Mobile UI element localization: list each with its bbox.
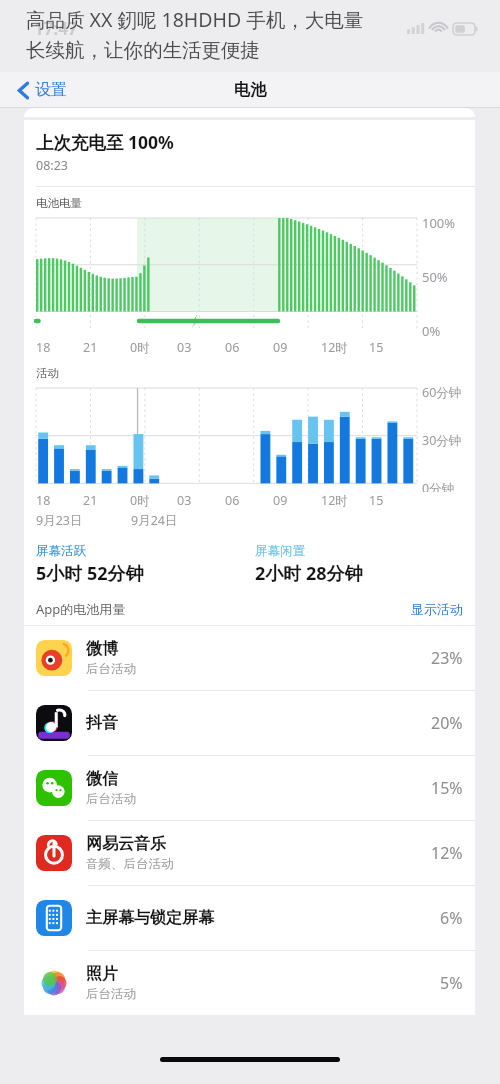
staticText: 音频、后台活动 (86, 856, 174, 872)
staticText: 屏幕活跃 (36, 543, 86, 559)
staticText: 5小时 52分钟 (36, 561, 144, 586)
staticText: 抖音 (86, 713, 118, 733)
staticText: 06 (225, 492, 273, 509)
staticText: 高品质 XX 釰呢 18HDHD 手机，大电量 (26, 6, 364, 33)
staticText: 长续航，让你的生活更便捷 (26, 38, 260, 63)
staticText: 18 (36, 492, 83, 509)
button[interactable]: 网易云音乐 (24, 821, 475, 886)
staticText: 后台活动 (86, 986, 136, 1002)
staticText: 主屏幕与锁定屏幕 (86, 908, 214, 928)
staticText: 活动 (36, 366, 59, 380)
staticText: 100% (422, 214, 456, 232)
staticText: 网易云音乐 (86, 834, 166, 854)
staticText: 30分钟 (422, 432, 462, 449)
staticText: 电池电量 (36, 196, 82, 210)
staticText: 2小时 28分钟 (255, 561, 363, 586)
button[interactable]: 微信 (24, 756, 475, 821)
button[interactable]: 微博 (24, 626, 475, 691)
staticText: 0时 (130, 339, 177, 356)
staticText: 60分钟 (422, 384, 462, 401)
staticText: 17:47 (34, 17, 78, 40)
button[interactable]: 照片 (24, 951, 475, 1015)
staticText: 08:23 (36, 157, 68, 174)
staticText: 50% (422, 268, 448, 286)
button[interactable]: 主屏幕与锁定屏幕 (24, 886, 475, 951)
staticText: 15 (369, 492, 417, 509)
staticText: 微博 (86, 639, 118, 659)
staticText: 06 (225, 339, 273, 356)
button[interactable]: 设置 (14, 77, 71, 103)
staticText: 18 (36, 339, 83, 356)
staticText: 后台活动 (86, 791, 136, 807)
staticText: 23% (431, 647, 463, 669)
staticText: 20% (431, 712, 463, 734)
staticText: 屏幕闲置 (255, 543, 305, 559)
staticText: 0分钟 (422, 480, 455, 492)
staticText: 0时 (130, 492, 177, 509)
staticText: 电池 (234, 80, 266, 100)
staticText: 0% (422, 322, 441, 339)
staticText: 照片 (86, 964, 118, 984)
staticText: 显示活动 (411, 601, 463, 617)
staticText: 12时 (321, 492, 369, 509)
staticText: 9月23日 (36, 512, 131, 529)
button[interactable]: 显示活动 (411, 601, 463, 617)
staticText: 9月24日 (131, 512, 417, 529)
staticText: 15 (369, 339, 417, 356)
staticText: 21 (83, 339, 130, 356)
button[interactable]: 抖音 (24, 691, 475, 756)
staticText: 微信 (86, 769, 118, 789)
staticText: 上次充电至 100% (36, 130, 174, 154)
staticText: 09 (273, 492, 321, 509)
staticText: 后台活动 (86, 661, 136, 677)
staticText: 03 (177, 492, 225, 509)
staticText: 5% (440, 972, 463, 994)
staticText: App的电池用量 (36, 600, 411, 618)
staticText: 15% (431, 777, 463, 799)
staticText: 6% (440, 907, 463, 929)
staticText: 03 (177, 339, 225, 356)
staticText: 21 (83, 492, 130, 509)
staticText: 12% (431, 842, 463, 864)
staticText: 设置 (35, 80, 67, 100)
staticText: 09 (273, 339, 321, 356)
staticText: 12时 (321, 339, 369, 356)
